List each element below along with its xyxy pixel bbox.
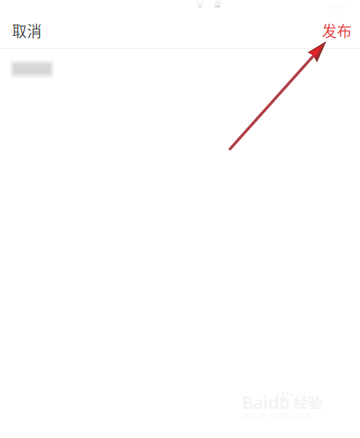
staticText: 经验: [293, 394, 323, 412]
staticText: 取消: [12, 19, 42, 41]
staticText: Baidu: [242, 392, 290, 413]
button[interactable]: 取消: [0, 9, 54, 51]
staticText: 发布: [322, 19, 352, 41]
button[interactable]: Title: [0, 49, 360, 91]
button[interactable]: 发布: [314, 9, 360, 51]
